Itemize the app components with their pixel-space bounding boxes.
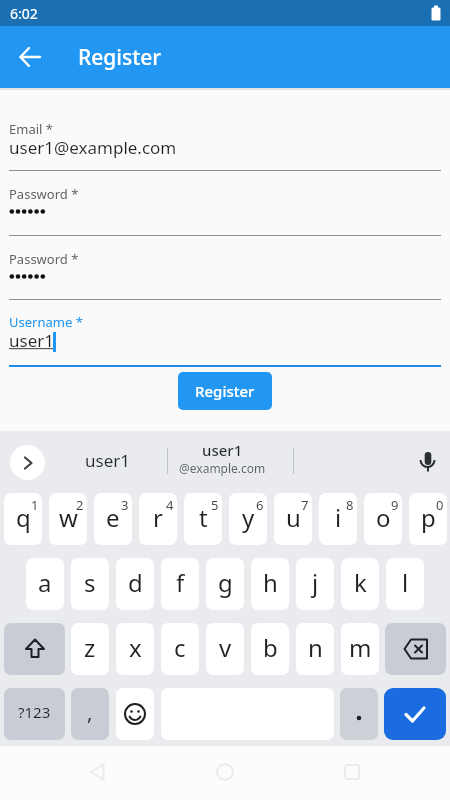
staticText: 5 [211,496,219,514]
staticText: ?123 [18,702,51,722]
button[interactable]: user1 [60,440,155,480]
button[interactable] [385,623,446,675]
staticText: u [286,501,301,534]
staticText: q [16,501,31,534]
button[interactable]: y [229,493,267,545]
staticText: 9 [391,496,399,514]
staticText: j [312,566,319,599]
button[interactable] [412,445,444,479]
button[interactable]: i [319,493,357,545]
staticText: r [153,501,163,534]
staticText: 4 [166,496,174,514]
staticText: i [335,501,342,534]
staticText: 6 [256,496,264,514]
button[interactable]: a [26,558,64,610]
staticText: 8 [346,496,354,514]
button[interactable]: d [116,558,154,610]
button[interactable]: u [274,493,312,545]
button[interactable]: n [296,623,334,675]
button[interactable] [205,752,245,792]
button[interactable]: c [161,623,199,675]
staticText: 1 [31,496,39,514]
staticText: a [38,566,52,599]
staticText: 7 [301,496,309,514]
staticText: m [349,631,372,664]
button[interactable]: r [139,493,177,545]
button[interactable]: m [341,623,379,675]
button[interactable] [10,445,45,480]
staticText: 3 [121,496,129,514]
staticText: b [263,631,278,664]
staticText: user1 [202,440,243,460]
staticText: e [106,501,120,534]
staticText: z [84,631,96,664]
button[interactable]: f [161,558,199,610]
staticText: Email * [9,120,53,138]
button[interactable] [116,688,154,740]
staticText: d [128,566,143,599]
staticText: h [263,566,278,599]
staticText: Username * [9,313,83,331]
button[interactable]: v [206,623,244,675]
button[interactable] [332,752,372,792]
button[interactable]: x [116,623,154,675]
staticText: k [354,566,367,599]
button[interactable] [8,35,52,79]
button[interactable]: e [94,493,132,545]
button[interactable] [384,688,446,740]
button[interactable]: z [71,623,109,675]
button[interactable] [78,752,118,792]
staticText: s [84,566,96,599]
staticText: n [308,631,323,664]
staticText: user1 [85,449,130,472]
staticText: x [129,631,142,664]
staticText: @example.com [179,460,266,476]
staticText: p [421,501,436,534]
button[interactable]: l [386,558,424,610]
staticText: f [176,566,185,599]
button[interactable]: ?123 [4,688,65,740]
staticText: 6:02 [10,4,38,23]
staticText: Register [78,43,162,72]
staticText: l [402,566,409,599]
staticText: g [218,566,233,599]
button[interactable] [340,688,378,740]
button[interactable]: s [71,558,109,610]
staticText: c [174,631,186,664]
button[interactable]: o [364,493,402,545]
button[interactable]: j [296,558,334,610]
staticText: t [199,501,208,534]
button[interactable]: h [251,558,289,610]
button[interactable]: b [251,623,289,675]
staticText: user1@example.com [9,136,177,159]
button[interactable]: g [206,558,244,610]
button[interactable]: k [341,558,379,610]
staticText: o [376,501,391,534]
staticText: y [242,501,255,534]
button[interactable]: t [184,493,222,545]
staticText: 0 [436,496,444,514]
button[interactable]: user1 [166,438,278,482]
staticText: 2 [76,496,84,514]
staticText: w [59,501,78,534]
staticText: v [219,631,232,664]
button[interactable] [4,623,65,675]
button[interactable]: q [4,493,42,545]
button[interactable]: , [71,688,109,740]
staticText: Register [195,381,255,401]
button[interactable]: Register [178,372,272,410]
staticText: , [87,699,93,726]
staticText: Password * [9,185,79,203]
button[interactable]: w [49,493,87,545]
staticText: Password * [9,250,79,268]
button[interactable]: p [409,493,447,545]
staticText: user1 [9,329,54,352]
